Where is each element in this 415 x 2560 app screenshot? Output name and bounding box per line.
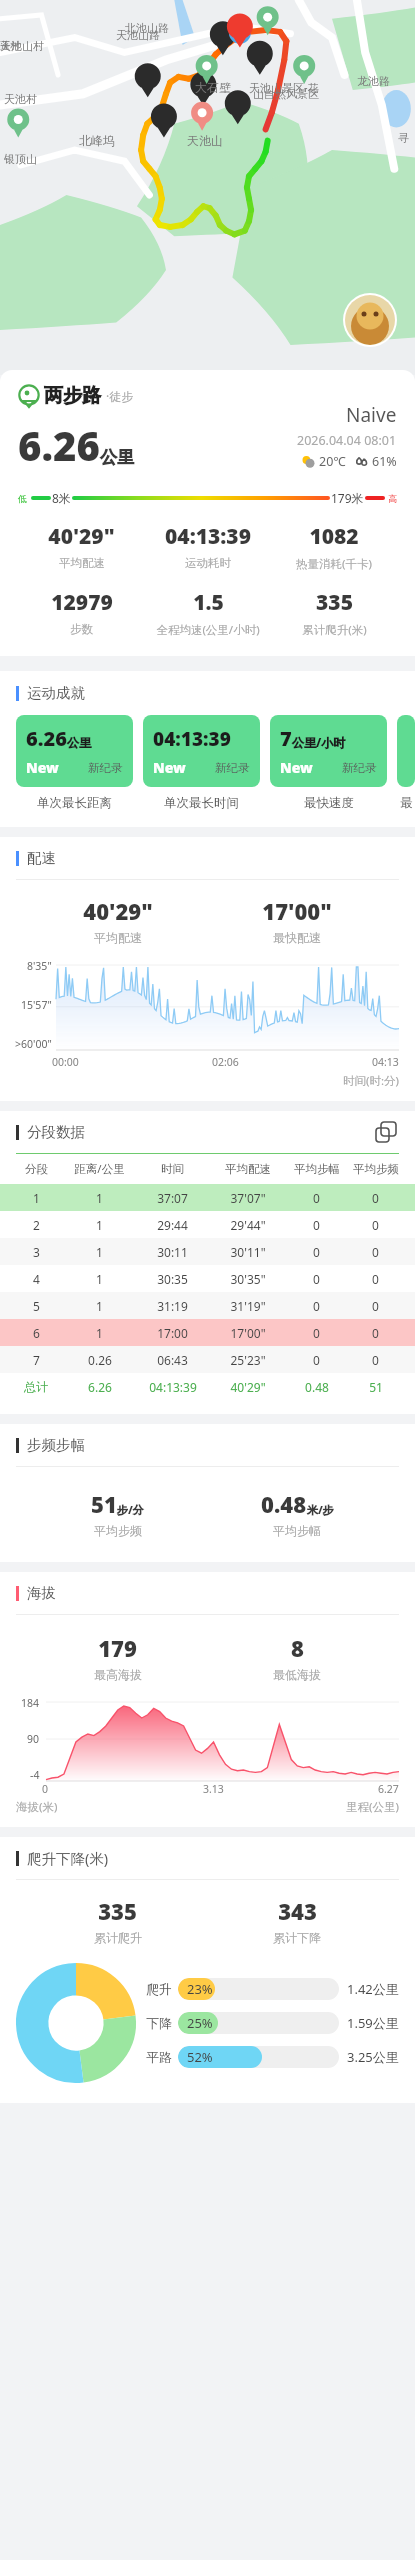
staticText: -4 [30, 1768, 40, 1782]
staticText: 新纪录 [215, 761, 250, 775]
staticText: 0 [372, 1244, 379, 1260]
staticText: 1.42公里 [347, 1980, 399, 1998]
staticText: 步数 [70, 622, 93, 636]
button[interactable]: New [397, 715, 415, 787]
staticText: 时间 [161, 1162, 184, 1176]
button[interactable]: 7 [270, 715, 387, 787]
staticText: 1 [96, 1217, 103, 1233]
staticText: 04:13:39 [165, 522, 251, 551]
staticText: 运动耗时 [185, 556, 231, 570]
staticText: 6.26 [18, 418, 100, 472]
staticText: 最低海拔 [273, 1667, 321, 1682]
staticText: 3.25公里 [347, 2048, 399, 2066]
button[interactable]: 04:13:39 [143, 715, 260, 787]
staticText: 新纪录 [342, 761, 377, 775]
staticText: 平均步频 [94, 1523, 142, 1538]
button[interactable]: 4 [10, 1265, 405, 1292]
button[interactable]: 7 [10, 1346, 405, 1373]
staticText: 爬升下降(米) [27, 1848, 109, 1868]
staticText: 两步路 [44, 384, 101, 408]
staticText: 单次最长距离 [37, 795, 112, 811]
staticText: 全程均速(公里/小时) [156, 622, 260, 638]
staticText: 5 [33, 1298, 40, 1314]
staticText: 1 [96, 1271, 103, 1287]
staticText: 天池山 [187, 133, 223, 148]
button[interactable]: 5 [10, 1292, 405, 1319]
staticText: 下降 [146, 2015, 172, 2031]
staticText: 0 [313, 1244, 320, 1260]
button[interactable]: Profile avatar [345, 295, 395, 345]
staticText: 天池山路 [116, 28, 160, 42]
button[interactable]: 6.26 [16, 715, 133, 787]
staticText: 179米 [331, 490, 364, 506]
staticText: 31'19" [230, 1298, 266, 1314]
staticText: 0 [372, 1352, 379, 1368]
staticText: 公里 [100, 447, 134, 468]
staticText: 2 [33, 1217, 40, 1233]
staticText: 0.26 [88, 1352, 112, 1368]
staticText: 4 [33, 1271, 40, 1287]
staticText: 0 [372, 1217, 379, 1233]
staticText: 179 [98, 1633, 137, 1663]
staticText: 0.48 [261, 1489, 307, 1519]
staticText: 最快配速 [273, 930, 321, 945]
staticText: 61% [372, 453, 397, 470]
staticText: 平均配速 [59, 556, 105, 570]
staticText: 17:00 [157, 1325, 188, 1341]
staticText: 30:11 [157, 1244, 188, 1260]
staticText: 时间(时:分) [343, 1073, 399, 1089]
staticText: 25'23" [230, 1352, 266, 1368]
staticText: 分段 [25, 1162, 48, 1176]
staticText: 29:44 [157, 1217, 188, 1233]
button[interactable]: 北池山路 [0, 0, 415, 375]
staticText: 3 [33, 1244, 40, 1260]
staticText: 银顶山 [4, 152, 37, 166]
button[interactable]: Export segment data [373, 1119, 399, 1145]
staticText: 0 [313, 1325, 320, 1341]
staticText: 1.59公里 [347, 2014, 399, 2032]
staticText: 0 [42, 1782, 49, 1796]
staticText: 6 [33, 1325, 40, 1341]
staticText: 天池村 [4, 92, 37, 106]
staticText: 25% [187, 2014, 213, 2032]
button[interactable]: 1 [10, 1184, 405, 1211]
staticText: 大石壁 [195, 80, 231, 95]
staticText: 距离/公里 [74, 1161, 125, 1177]
staticText: 6.26 [88, 1379, 112, 1395]
staticText: 6.27 [378, 1782, 399, 1796]
staticText: 平均配速 [225, 1162, 271, 1176]
staticText: 配速 [27, 849, 56, 867]
staticText: 山自然风景区 [253, 87, 319, 101]
staticText: 天池山景区-花 [249, 80, 319, 95]
staticText: 15'57" [21, 998, 52, 1012]
staticText: 52% [187, 2048, 213, 2066]
staticText: 公里 [67, 735, 91, 750]
staticText: 343 [278, 1896, 317, 1926]
staticText: 00:00 [52, 1055, 79, 1069]
staticText: 0 [372, 1190, 379, 1206]
staticText: 31:19 [157, 1298, 188, 1314]
staticText: 29'44" [230, 1217, 266, 1233]
staticText: 0 [313, 1298, 320, 1314]
staticText: 步/分 [117, 1502, 144, 1517]
staticText: 17'00" [262, 896, 332, 926]
staticText: 30'35" [230, 1271, 266, 1287]
staticText: 高 [388, 493, 397, 504]
staticText: 12979 [51, 588, 113, 617]
staticText: 累计下降 [273, 1930, 321, 1945]
staticText: 1 [96, 1190, 103, 1206]
staticText: 天池山村 [0, 39, 44, 53]
staticText: 02:06 [212, 1055, 239, 1069]
button[interactable]: 2 [10, 1211, 405, 1238]
staticText: 平均配速 [94, 930, 142, 945]
staticText: 寻 [398, 131, 409, 145]
staticText: 海拔 [27, 1584, 56, 1602]
staticText: 运动成就 [27, 684, 85, 702]
staticText: 1082 [309, 522, 359, 551]
button[interactable]: 3 [10, 1238, 405, 1265]
button[interactable]: 6 [10, 1319, 405, 1346]
staticText: 公里/小时 [292, 734, 346, 750]
staticText: 累计爬升 [94, 1930, 142, 1945]
staticText: 0 [313, 1190, 320, 1206]
staticText: 0 [372, 1325, 379, 1341]
